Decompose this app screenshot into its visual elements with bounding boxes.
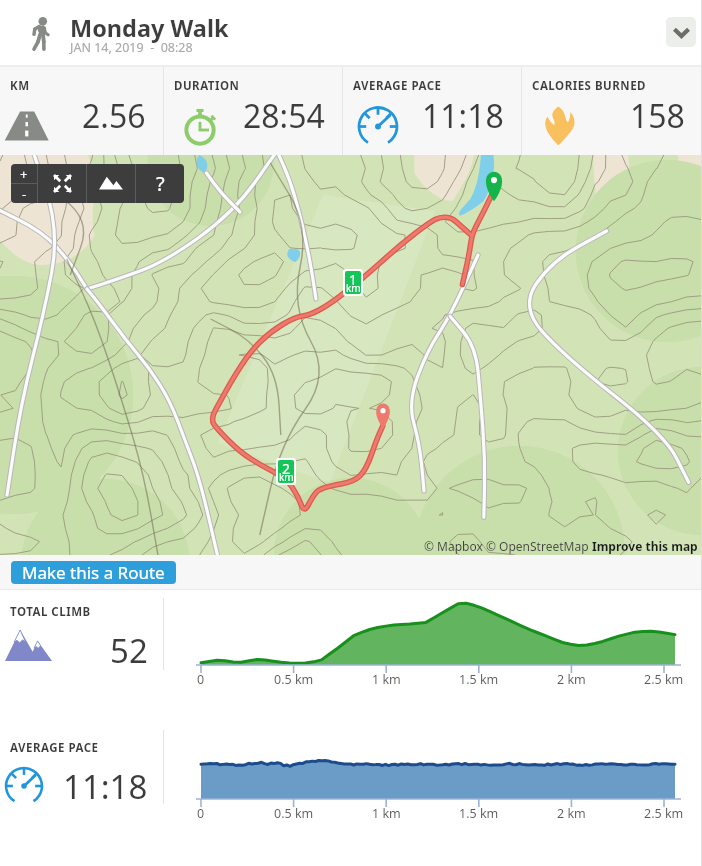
staticText: Monday Walk bbox=[70, 12, 229, 44]
staticText: 158 bbox=[630, 94, 685, 138]
staticText: 11:18 bbox=[422, 94, 504, 138]
staticText: 1 bbox=[349, 271, 358, 289]
staticText: 2.56 bbox=[82, 94, 146, 138]
staticText: 1 km bbox=[372, 671, 401, 688]
staticText: + bbox=[20, 165, 28, 183]
staticText: 0.5 km bbox=[274, 805, 314, 822]
staticText: 0 bbox=[197, 671, 205, 688]
staticText: KM bbox=[10, 78, 30, 94]
staticText: JAN 14, 2019 - 08:28 bbox=[70, 39, 193, 56]
staticText: 1.5 km bbox=[459, 671, 499, 688]
staticText: © Mapbox © OpenStreetMap bbox=[424, 538, 592, 554]
staticText: 11:18 bbox=[63, 764, 148, 804]
staticText: AVERAGE PACE bbox=[353, 78, 442, 94]
staticText: 1.5 km bbox=[459, 805, 499, 822]
staticText: 2.5 km bbox=[644, 805, 684, 822]
staticText: 52 bbox=[110, 628, 148, 668]
staticText: 0 bbox=[197, 805, 205, 822]
staticText: CALORIES BURNED bbox=[532, 78, 647, 94]
staticText: 28:54 bbox=[243, 94, 325, 138]
button[interactable]: Help bbox=[136, 164, 184, 203]
button[interactable]: Terrain layer bbox=[87, 164, 135, 203]
staticText: km bbox=[346, 281, 361, 294]
staticText: ? bbox=[156, 170, 165, 197]
staticText: DURATION bbox=[174, 78, 240, 94]
staticText: 2 bbox=[282, 460, 291, 478]
staticText: 2.5 km bbox=[644, 671, 684, 688]
staticText: 2 km bbox=[557, 805, 586, 822]
staticText: - bbox=[22, 185, 27, 203]
staticText: 2 km bbox=[557, 671, 586, 688]
button[interactable]: Make this a Route bbox=[11, 561, 176, 584]
staticText: TOTAL CLIMB bbox=[10, 604, 91, 620]
staticText: Make this a Route bbox=[22, 561, 165, 584]
staticText: km bbox=[279, 470, 294, 483]
staticText: AVERAGE PACE bbox=[10, 740, 99, 756]
staticText: 1 km bbox=[372, 805, 401, 822]
staticText: Improve this map bbox=[592, 538, 698, 554]
button[interactable]: Fullscreen bbox=[38, 164, 86, 203]
button[interactable]: Expand details bbox=[666, 17, 696, 47]
staticText: 0.5 km bbox=[274, 671, 314, 688]
button[interactable]: Zoom in and out bbox=[11, 164, 37, 203]
